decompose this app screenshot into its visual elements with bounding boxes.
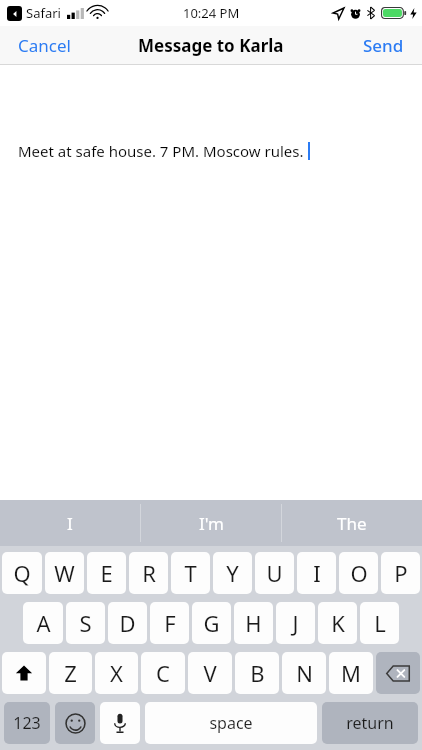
staticText: Cancel [18, 34, 71, 57]
staticText: R [142, 558, 156, 588]
button[interactable]: T [171, 552, 210, 594]
button[interactable]: I [297, 552, 336, 594]
button[interactable]: The [282, 500, 422, 546]
button[interactable]: A [23, 602, 63, 644]
button[interactable]: N [282, 652, 326, 694]
button[interactable]: Send [345, 28, 422, 63]
staticText: Meet at safe house. 7 PM. Moscow rules. [18, 141, 304, 161]
button[interactable]: Z [49, 652, 92, 694]
staticText: M [341, 658, 361, 688]
button[interactable]: M [329, 652, 373, 694]
staticText: O [350, 558, 368, 588]
button[interactable]: Y [213, 552, 252, 594]
staticText: S [79, 608, 92, 638]
staticText: U [266, 558, 283, 588]
button[interactable]: Shift [2, 652, 46, 694]
button[interactable]: O [339, 552, 378, 594]
button[interactable]: Emoji [55, 702, 95, 744]
staticText: G [203, 608, 220, 638]
button[interactable]: K [318, 602, 357, 644]
staticText: Z [64, 658, 77, 688]
button[interactable]: V [188, 652, 232, 694]
staticText: T [184, 558, 197, 588]
staticText: I'm [199, 512, 224, 535]
staticText: space [209, 712, 253, 734]
staticText: V [203, 658, 217, 688]
staticText: W [54, 558, 75, 588]
button[interactable]: P [381, 552, 420, 594]
button[interactable]: return [322, 702, 418, 744]
button[interactable]: I'm [141, 500, 281, 546]
staticText: Y [226, 558, 239, 588]
staticText: The [337, 512, 367, 535]
staticText: F [164, 608, 176, 638]
button[interactable]: W [45, 552, 84, 594]
staticText: D [119, 608, 136, 638]
staticText: E [100, 558, 113, 588]
button[interactable]: B [235, 652, 279, 694]
button[interactable]: J [276, 602, 315, 644]
staticText: Send [363, 34, 404, 57]
staticText: Message to Karla [138, 34, 284, 57]
button[interactable]: Cancel [0, 28, 89, 63]
button[interactable]: Backspace [376, 652, 420, 694]
button[interactable]: I [0, 500, 140, 546]
staticText: 123 [13, 712, 41, 734]
staticText: 10:24 PM [183, 4, 240, 22]
button[interactable]: Dictate [100, 702, 140, 744]
button[interactable]: X [95, 652, 138, 694]
button[interactable]: U [255, 552, 294, 594]
staticText: Safari [26, 4, 61, 22]
button[interactable]: 123 [4, 702, 50, 744]
button[interactable]: H [234, 602, 273, 644]
button[interactable]: S [66, 602, 105, 644]
button[interactable]: D [108, 602, 147, 644]
staticText: I [67, 512, 73, 535]
staticText: B [250, 658, 265, 688]
button[interactable]: space [145, 702, 317, 744]
staticText: K [331, 608, 345, 638]
staticText: return [346, 712, 394, 734]
button[interactable]: L [360, 602, 399, 644]
staticText: A [36, 608, 51, 638]
staticText: X [110, 658, 123, 688]
button[interactable]: G [192, 602, 231, 644]
button[interactable]: R [129, 552, 168, 594]
staticText: I [313, 558, 321, 588]
button[interactable]: F [150, 602, 189, 644]
button[interactable]: C [141, 652, 185, 694]
staticText: P [394, 558, 408, 588]
button[interactable]: E [87, 552, 126, 594]
staticText: H [245, 608, 262, 638]
button[interactable]: Q [2, 552, 42, 594]
staticText: L [374, 608, 386, 638]
staticText: Q [13, 558, 31, 588]
staticText: J [292, 608, 299, 638]
staticText: N [296, 658, 313, 688]
staticText: C [156, 658, 170, 688]
